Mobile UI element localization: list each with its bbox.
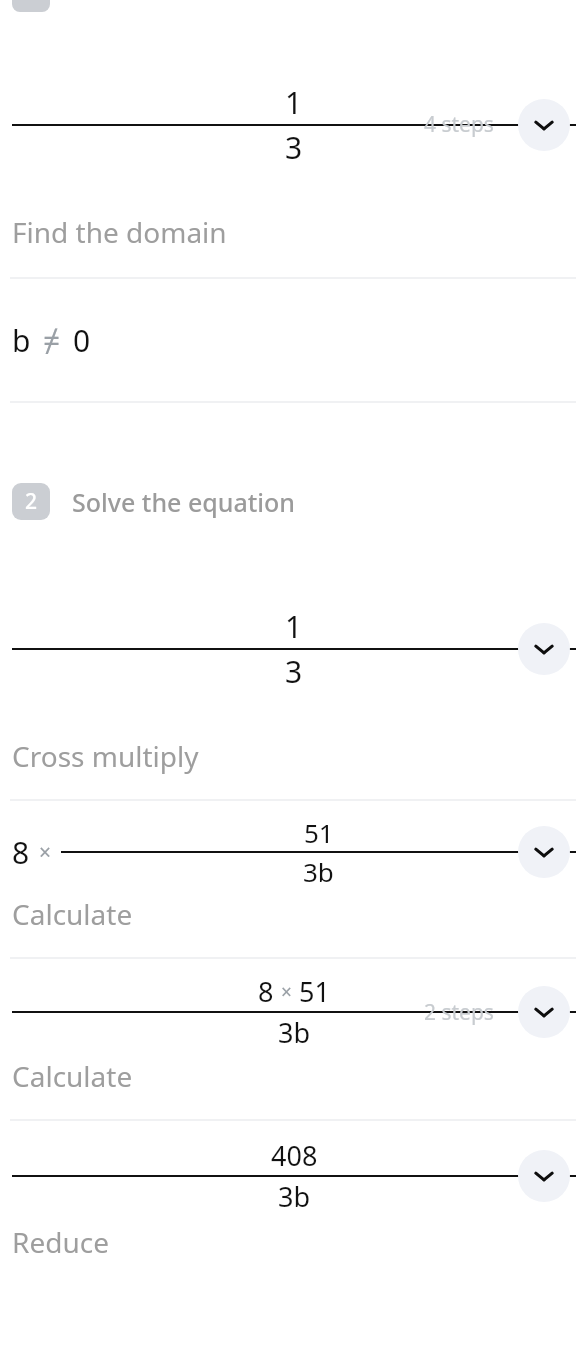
staticText: 3 (285, 651, 303, 692)
staticText: 2 (25, 487, 38, 516)
staticText: 2 steps (424, 998, 494, 1027)
staticText: 8 (258, 973, 274, 1010)
button[interactable]: Expand step (518, 826, 570, 878)
button[interactable]: 2 (0, 483, 576, 520)
staticText: Reduce (12, 1223, 109, 1261)
button[interactable]: 8 (0, 801, 576, 957)
staticText: Calculate (12, 1057, 133, 1095)
staticText: Cross multiply (12, 737, 199, 775)
staticText: × (39, 838, 52, 867)
staticText: 4 steps (424, 110, 494, 139)
staticText: 3b (278, 1014, 311, 1051)
button[interactable]: 408 (0, 1121, 576, 1285)
staticText: 3 (285, 127, 303, 168)
staticText: 1 (285, 82, 303, 123)
staticText: 408 (271, 1137, 318, 1174)
button[interactable]: b (0, 279, 576, 401)
button[interactable]: 1 (0, 520, 576, 799)
staticText: 3b (278, 1178, 311, 1215)
staticText: Find the domain (12, 213, 227, 251)
staticText: b (12, 320, 31, 361)
staticText: 3b (303, 854, 334, 889)
staticText: Calculate (12, 895, 133, 933)
staticText: ≠ (43, 320, 61, 361)
staticText: 51 (299, 973, 330, 1010)
button[interactable]: 1 (0, 12, 576, 277)
button[interactable]: Expand step (518, 623, 570, 675)
staticText: 1 (285, 606, 303, 647)
button[interactable]: Expand step (518, 1150, 570, 1202)
button[interactable]: Expand step (518, 99, 570, 151)
staticText: × (281, 979, 292, 1005)
staticText: 8 (12, 832, 30, 873)
staticText: 0 (73, 320, 91, 361)
staticText: 51 (304, 815, 334, 850)
button[interactable]: 8 (0, 959, 576, 1119)
button[interactable]: Expand step (518, 986, 570, 1038)
staticText: Solve the equation (72, 485, 296, 519)
